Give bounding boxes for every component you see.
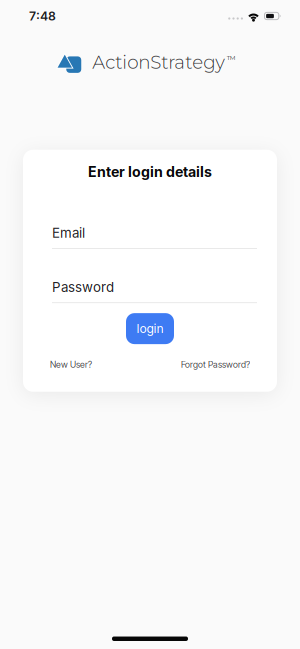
staticText: login: [136, 321, 163, 336]
button[interactable]: New User?: [50, 359, 92, 370]
staticText: ActionStrategy: [92, 51, 225, 73]
staticText: TM: [227, 54, 236, 61]
button[interactable]: login: [126, 313, 174, 344]
button[interactable]: Email: [23, 225, 277, 249]
staticText: Email: [52, 225, 85, 241]
staticText: Forgot Password?: [181, 359, 250, 370]
staticText: New User?: [50, 359, 92, 370]
staticText: 7:48: [29, 9, 56, 23]
button[interactable]: Password: [23, 279, 277, 303]
button[interactable]: Forgot Password?: [181, 359, 250, 370]
staticText: Enter login details: [88, 163, 212, 180]
staticText: Password: [52, 279, 114, 295]
